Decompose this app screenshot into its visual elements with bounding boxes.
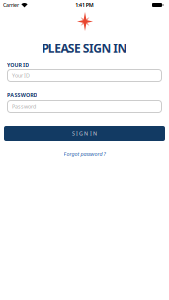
staticText: 1:41 PM [75,1,94,9]
button[interactable]: Password [7,100,162,113]
button[interactable]: Your ID [7,69,162,82]
staticText: Password [12,103,36,110]
staticText: YOUR ID [7,61,29,69]
button[interactable]: Forgot password ? [63,150,105,158]
staticText: Your ID [12,72,30,79]
staticText: PLEASE SIGN IN [42,40,127,56]
staticText: Carrier [3,1,19,9]
staticText: Forgot password ? [63,150,105,158]
button[interactable]: Sign In [4,126,165,141]
staticText: PASSWORD [7,91,37,99]
staticText: S I G N I N [72,130,97,137]
